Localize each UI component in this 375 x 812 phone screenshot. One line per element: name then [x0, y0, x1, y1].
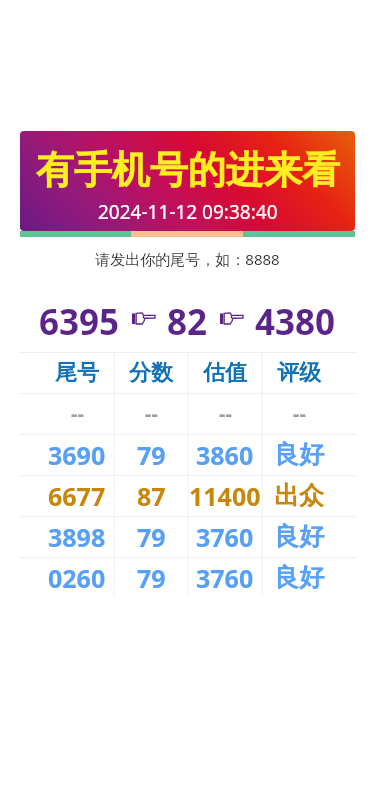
staticText: 有手机号的进来看	[36, 146, 340, 194]
button[interactable]: 良好	[262, 434, 356, 475]
button[interactable]: 良好	[262, 557, 356, 598]
staticText: 评级	[277, 359, 321, 387]
staticText: 3760	[196, 520, 254, 554]
button[interactable]: 3760	[188, 516, 262, 557]
button[interactable]: --	[188, 393, 262, 434]
staticText: 11400	[189, 479, 261, 513]
staticText: 0260	[48, 561, 106, 595]
staticText: 3690	[48, 438, 106, 472]
staticText: 3760	[196, 561, 254, 595]
staticText: 良好	[274, 562, 324, 593]
button[interactable]: --	[114, 393, 188, 434]
button[interactable]: 79	[114, 557, 188, 598]
button[interactable]: 3760	[188, 557, 262, 598]
button[interactable]: 出众	[262, 475, 356, 516]
button[interactable]: 尾号	[20, 352, 114, 393]
button[interactable]: 11400	[188, 475, 262, 516]
staticText: 87	[137, 479, 166, 513]
staticText: --	[145, 400, 158, 427]
staticText: 79	[137, 438, 166, 472]
staticText: 4380	[255, 298, 336, 338]
staticText: 79	[137, 561, 166, 595]
staticText: 良好	[274, 439, 324, 470]
button[interactable]: 3860	[188, 434, 262, 475]
button[interactable]: 3898	[20, 516, 114, 557]
button[interactable]: 良好	[262, 516, 356, 557]
staticText: 分数	[129, 359, 173, 387]
button[interactable]: 分数	[114, 352, 188, 393]
staticText: 82	[167, 298, 208, 338]
button[interactable]: 87	[114, 475, 188, 516]
staticText: --	[293, 400, 306, 427]
button[interactable]: --	[262, 393, 356, 434]
button[interactable]: --	[20, 393, 114, 434]
staticText: 2024-11-12 09:38:40	[98, 199, 278, 225]
button[interactable]: 评级	[262, 352, 356, 393]
staticText: 79	[137, 520, 166, 554]
button[interactable]: 0260	[20, 557, 114, 598]
button[interactable]: 估值	[188, 352, 262, 393]
staticText: 6677	[48, 479, 106, 513]
staticText: 估值	[203, 359, 247, 387]
staticText: --	[71, 400, 84, 427]
button[interactable]: 6677	[20, 475, 114, 516]
staticText: 良好	[274, 521, 324, 552]
staticText: 6395	[39, 298, 120, 338]
staticText: 3860	[196, 438, 254, 472]
other: pointing hand	[132, 312, 155, 324]
staticText: 请发出你的尾号，如：8888	[95, 249, 280, 269]
button[interactable]: 有手机号的进来看	[20, 131, 355, 231]
staticText: 3898	[48, 520, 106, 554]
other: pointing hand	[220, 312, 243, 324]
button[interactable]: 79	[114, 434, 188, 475]
button[interactable]: 79	[114, 516, 188, 557]
button[interactable]: 3690	[20, 434, 114, 475]
staticText: 出众	[274, 480, 324, 511]
staticText: --	[219, 400, 232, 427]
staticText: 尾号	[55, 359, 99, 387]
